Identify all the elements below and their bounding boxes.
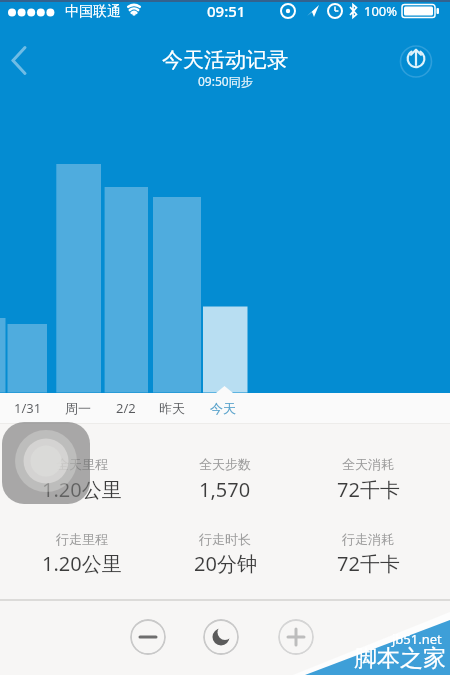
staticText: jb51.net [392, 630, 442, 648]
staticText: 1/31 [14, 399, 42, 417]
staticText: 全天里程 [56, 456, 108, 472]
staticText: 09:50同步 [198, 73, 253, 89]
staticText: 1.20公里 [42, 476, 122, 503]
staticText: 周一 [65, 400, 91, 416]
staticText: 今天 [210, 400, 236, 416]
button[interactable]: 昨天 [0, 0, 60, 22]
button[interactable] [398, 44, 434, 80]
staticText: 今天活动记录 [162, 47, 288, 73]
button[interactable]: 2/2 [0, 0, 60, 22]
staticText: 脚本之家 [354, 644, 446, 670]
button[interactable] [2, 422, 90, 504]
staticText: 100% [364, 2, 398, 20]
button[interactable] [0, 44, 40, 80]
staticText: 行走时长 [199, 531, 251, 547]
staticText: 1,570 [199, 476, 251, 503]
staticText: 72千卡 [337, 550, 400, 577]
button[interactable]: 1/31 [0, 0, 60, 22]
staticText: 20分钟 [194, 550, 257, 577]
staticText: 2/2 [116, 399, 136, 417]
staticText: 中国联通 [65, 3, 121, 21]
staticText: 全天消耗 [342, 456, 394, 472]
staticText: 09:51 [207, 1, 246, 21]
button[interactable] [130, 619, 166, 655]
button[interactable] [278, 619, 314, 655]
staticText: 昨天 [159, 400, 185, 416]
button[interactable]: 周一 [0, 0, 60, 22]
button[interactable]: 今天 [0, 0, 60, 22]
staticText: 行走消耗 [342, 531, 394, 547]
staticText: 72千卡 [337, 476, 400, 503]
button[interactable] [203, 619, 239, 655]
staticText: 行走里程 [56, 531, 108, 547]
staticText: 1.20公里 [42, 550, 122, 577]
staticText: 全天步数 [199, 456, 251, 472]
